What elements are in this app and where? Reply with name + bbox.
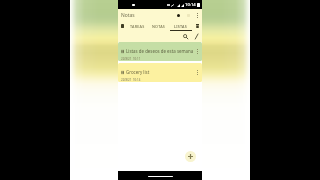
button[interactable]: Search <box>180 31 191 42</box>
staticText: LISTAS <box>174 24 188 29</box>
staticText: Notas <box>121 12 135 19</box>
staticText: 22/8/21 10:14 <box>121 78 141 82</box>
staticText: NOTAS <box>152 24 166 29</box>
button[interactable]: More options <box>193 11 202 20</box>
button[interactable]: Item menu <box>194 47 201 55</box>
button[interactable]: LISTAS <box>170 21 192 31</box>
staticText: Grocery list <box>126 69 194 75</box>
button[interactable]: Item menu <box>194 68 201 76</box>
staticText: 22/8/21 10:11 <box>121 57 141 61</box>
button[interactable]: TAREAS <box>126 21 148 31</box>
staticText: 10:14 <box>185 2 196 8</box>
button[interactable]: Notes list <box>118 21 126 31</box>
staticText: TAREAS <box>130 24 145 29</box>
button[interactable]: New note <box>185 151 196 162</box>
button[interactable]: Grid view <box>183 10 193 20</box>
staticText: Listas de deseos de esta semana <box>126 48 194 54</box>
button[interactable]: Grocery list <box>118 63 202 82</box>
button[interactable]: NOTAS <box>148 21 170 31</box>
button[interactable]: Archive <box>192 21 202 31</box>
button[interactable]: Account <box>173 10 183 20</box>
button[interactable]: Sort <box>191 31 202 42</box>
button[interactable]: Listas de deseos de esta semana <box>118 42 202 61</box>
